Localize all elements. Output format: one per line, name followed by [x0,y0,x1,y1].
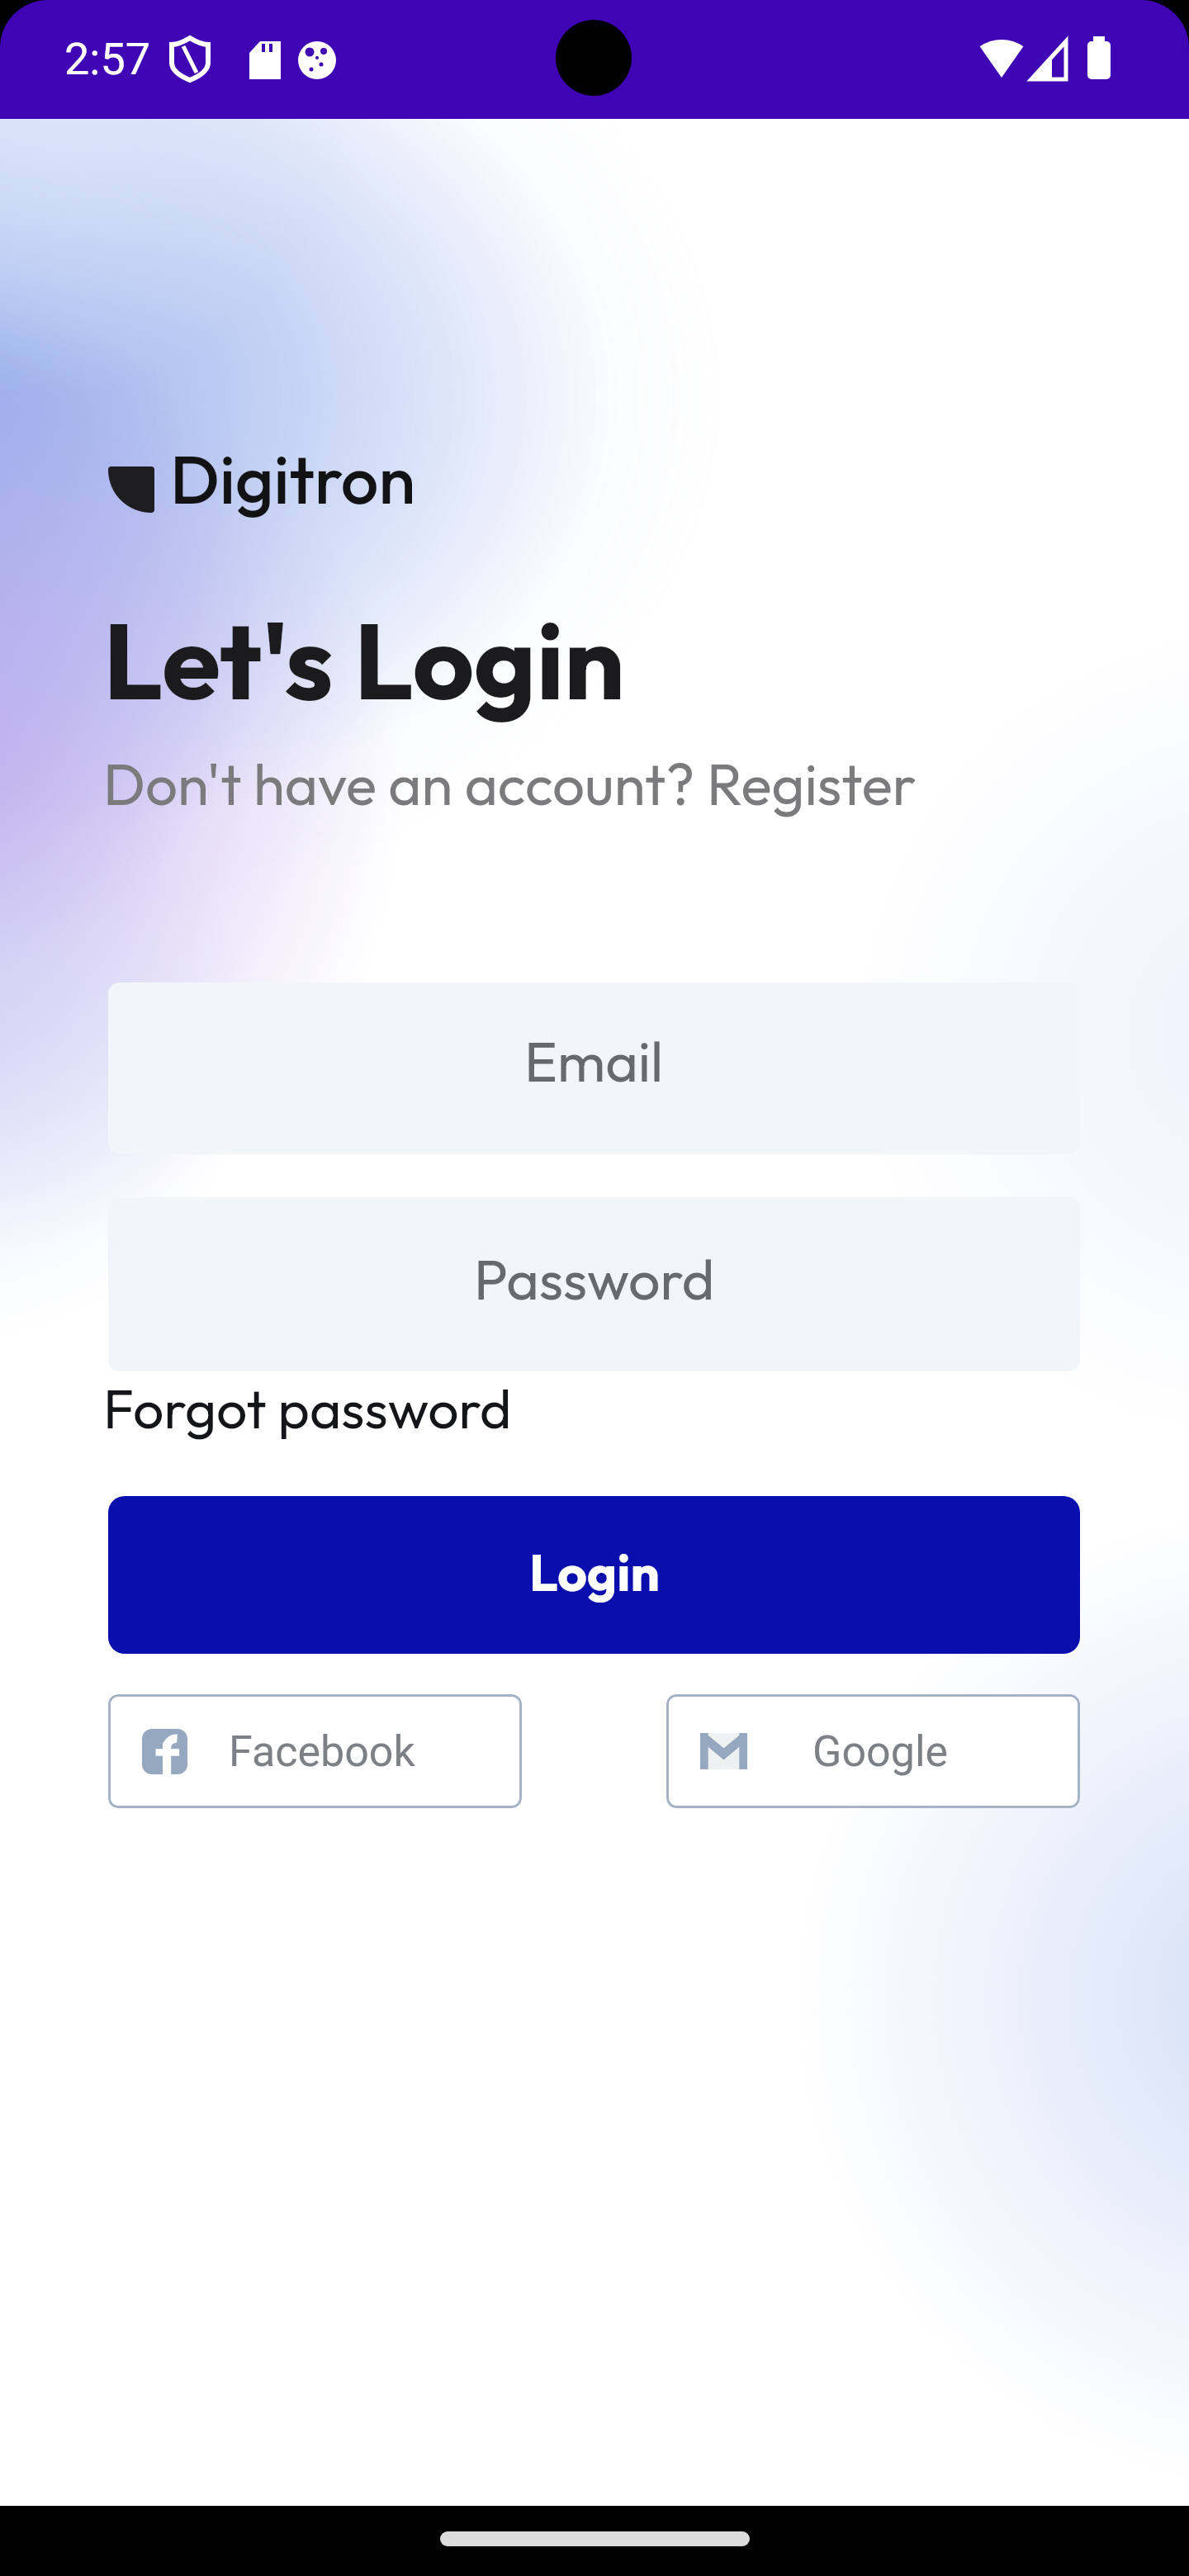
staticText: Password [474,1243,715,1314]
staticText: Let's Login [103,593,625,727]
button[interactable]: Login [108,1496,1080,1654]
staticText: Don't have an account? [103,748,707,820]
staticText: Login [529,1540,660,1604]
button[interactable]: Register [707,748,917,820]
button[interactable]: Forgot password [103,1374,512,1442]
staticText: Digitron [170,437,416,521]
staticText: Email [524,1025,664,1096]
button[interactable]: Facebook [108,1694,522,1808]
button[interactable]: Google [666,1694,1080,1808]
staticText: Google [812,1726,949,1777]
button[interactable]: Password [108,1197,1080,1371]
staticText: Facebook [229,1726,415,1777]
button[interactable]: Email [108,983,1080,1154]
staticText: 2:57 [64,33,151,85]
